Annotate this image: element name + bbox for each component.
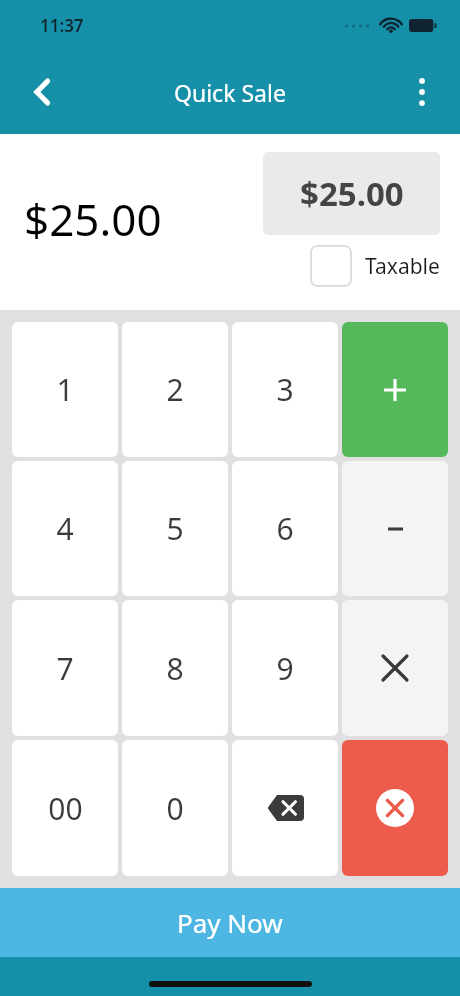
button[interactable]: $25.00 <box>263 152 440 235</box>
button[interactable]: 7 <box>12 600 118 736</box>
staticText: 4 <box>56 508 74 549</box>
staticText: 3 <box>276 369 294 410</box>
staticText: 7 <box>56 648 74 689</box>
button[interactable]: Multiply <box>342 600 448 736</box>
staticText: Pay Now <box>177 905 283 940</box>
staticText: 9 <box>276 648 294 689</box>
button[interactable]: 3 <box>232 322 338 457</box>
staticText: Taxable <box>365 252 440 281</box>
button[interactable]: 00 <box>12 740 118 876</box>
button[interactable]: Pay Now <box>0 888 460 957</box>
other: Subtract <box>388 527 403 531</box>
staticText: 0 <box>166 788 184 829</box>
button[interactable]: 2 <box>122 322 228 457</box>
button[interactable]: 9 <box>232 600 338 736</box>
staticText: 5 <box>166 508 184 549</box>
staticText: $25.00 <box>300 171 404 216</box>
button[interactable]: 6 <box>232 461 338 596</box>
button[interactable]: 0 <box>122 740 228 876</box>
staticText: 00 <box>48 788 83 829</box>
button[interactable]: Backspace <box>232 740 338 876</box>
other: Multiply <box>383 656 407 680</box>
staticText: 1 <box>56 369 74 410</box>
other: Add <box>384 379 406 401</box>
button[interactable]: Add <box>342 322 448 457</box>
button[interactable]: Clear <box>342 740 448 876</box>
button[interactable]: 5 <box>122 461 228 596</box>
staticText: 8 <box>166 648 184 689</box>
button[interactable]: More options <box>400 70 444 114</box>
staticText: $25.00 <box>24 189 162 249</box>
button[interactable]: Taxable <box>310 245 440 287</box>
button[interactable]: 8 <box>122 600 228 736</box>
button[interactable]: 4 <box>12 461 118 596</box>
button[interactable]: Subtract <box>342 461 448 596</box>
staticText: 6 <box>276 508 294 549</box>
button[interactable]: Back <box>20 70 64 114</box>
button[interactable]: 1 <box>12 322 118 457</box>
staticText: Quick Sale <box>174 77 286 108</box>
staticText: 11:37 <box>40 14 84 37</box>
staticText: 2 <box>166 369 184 410</box>
